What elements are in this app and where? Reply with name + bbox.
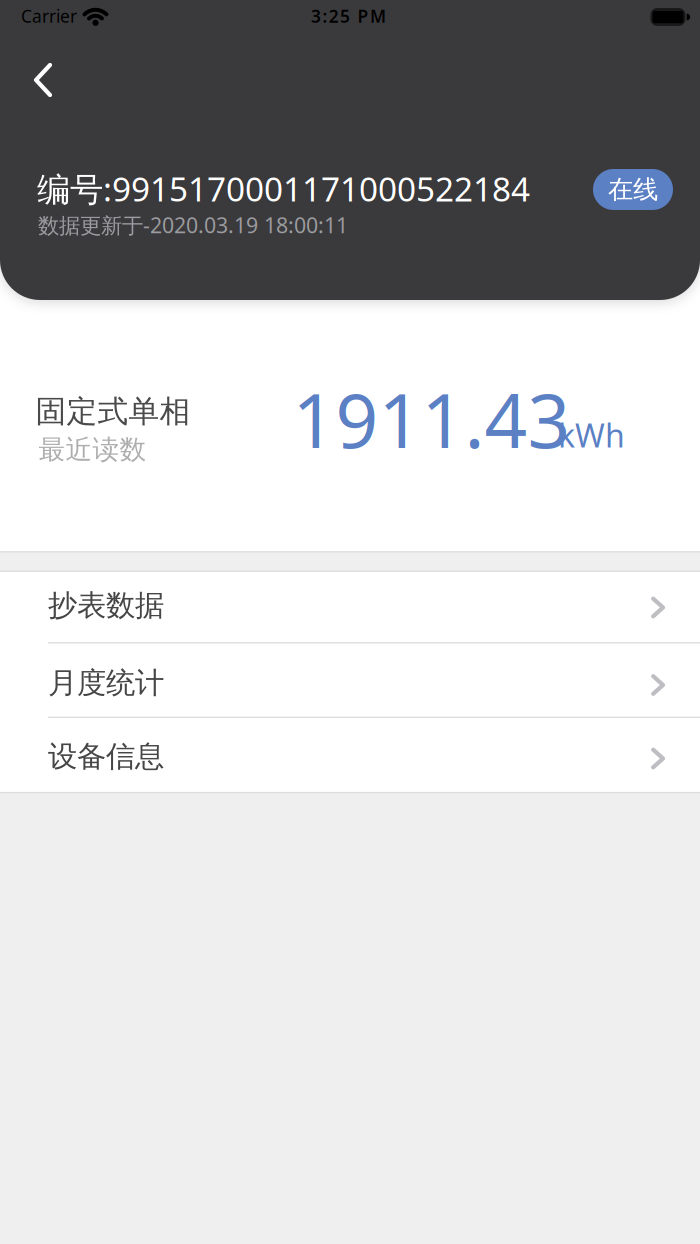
button[interactable]: Back [29, 57, 73, 102]
staticText: 1911.43 [292, 369, 570, 469]
staticText: 编号:9915170001171000522184 [37, 166, 530, 211]
staticText: kWh [558, 414, 625, 456]
staticText: 固定式单相 [35, 393, 190, 430]
staticText: 最近读数 [38, 433, 146, 466]
button[interactable]: 设备信息 [0, 721, 700, 792]
button[interactable]: 抄表数据 [0, 570, 700, 641]
button[interactable]: 月度统计 [0, 647, 700, 718]
staticText: 设备信息 [48, 738, 164, 774]
staticText: 月度统计 [48, 665, 164, 701]
staticText: 3:25 PM [311, 4, 386, 27]
staticText: 抄表数据 [48, 587, 164, 623]
staticText: Carrier [21, 4, 77, 27]
staticText: 数据更新于-2020.03.19 18:00:11 [38, 211, 348, 239]
staticText: 在线 [608, 174, 658, 205]
button[interactable]: 在线 [593, 169, 673, 210]
